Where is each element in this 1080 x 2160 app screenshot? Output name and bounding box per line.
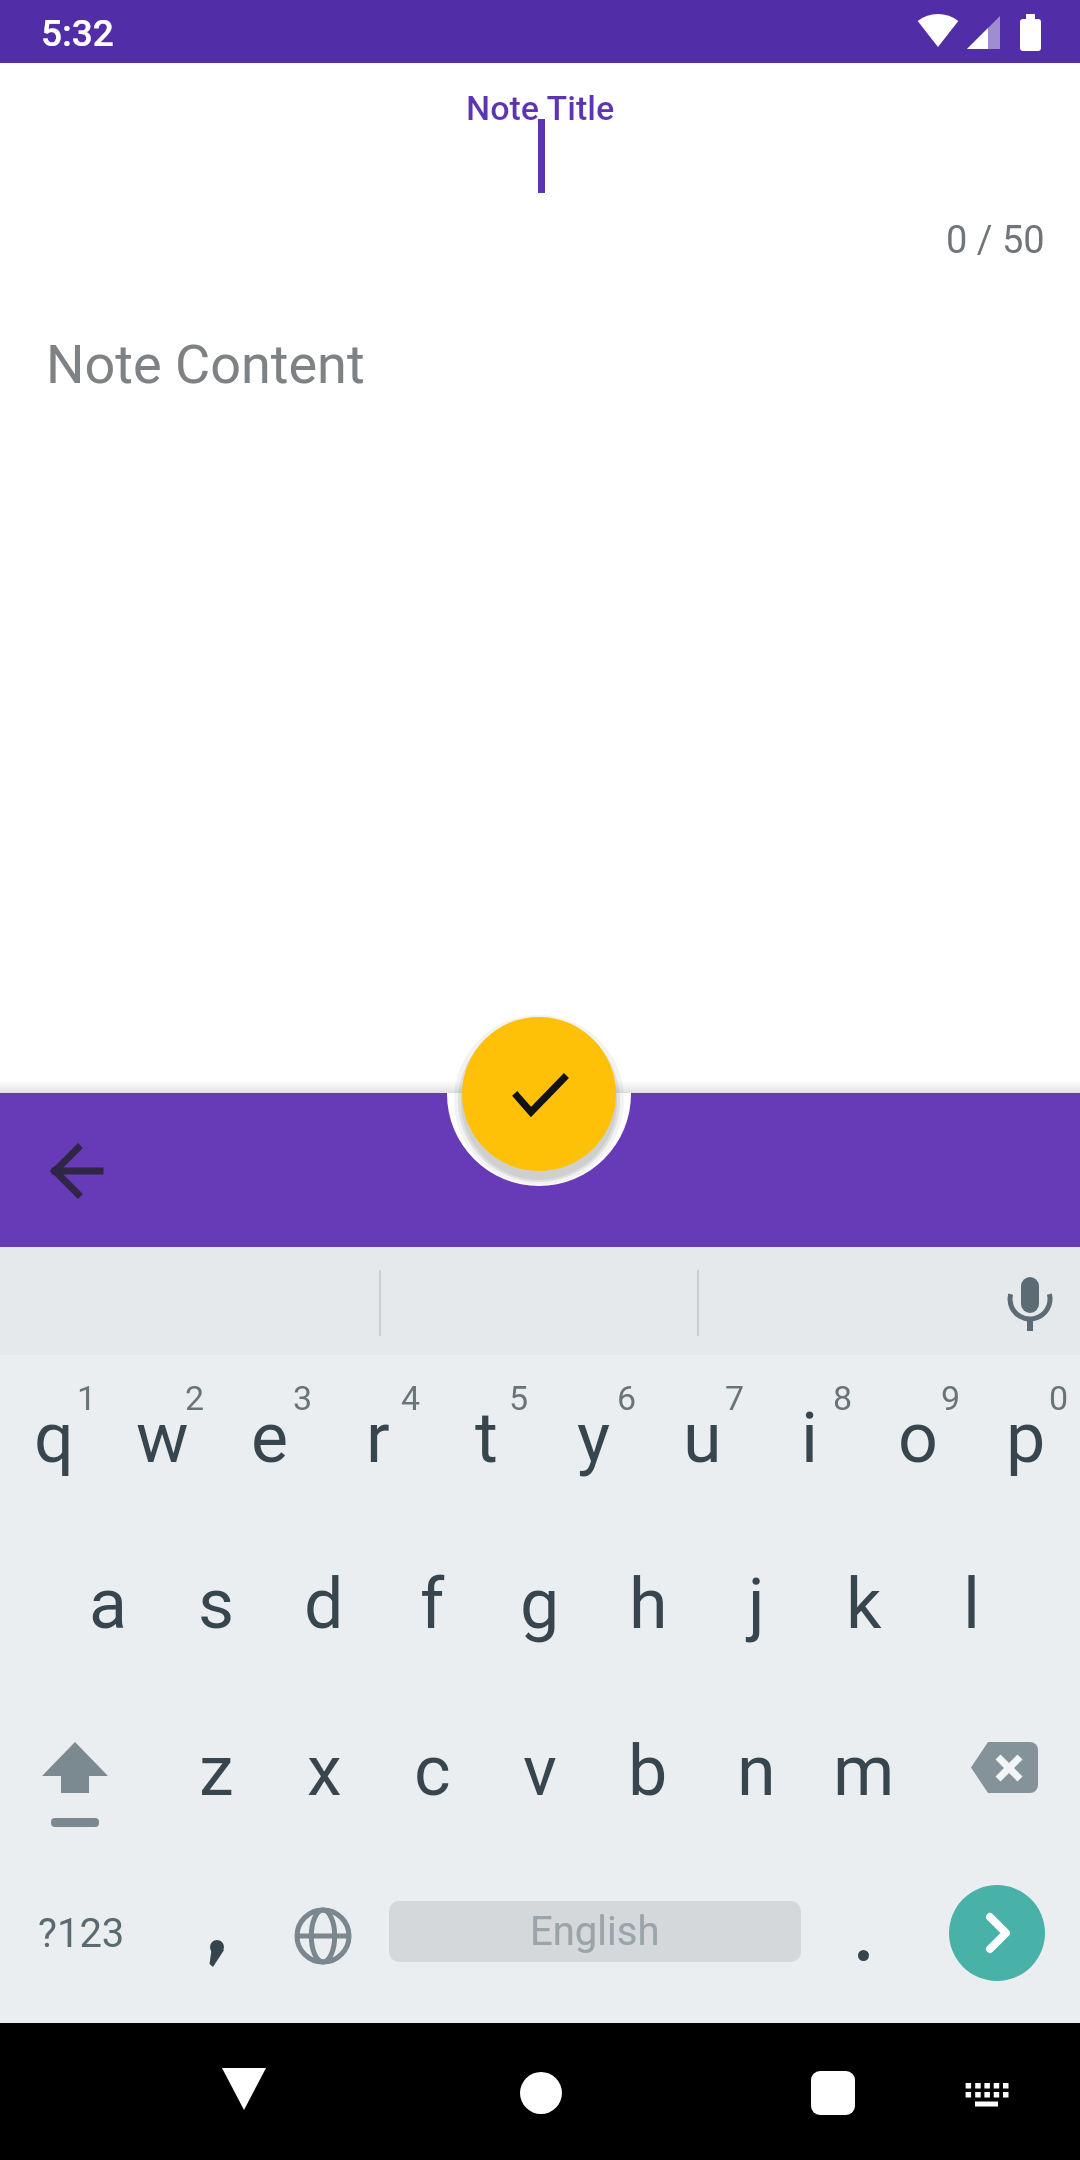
staticText: p bbox=[1006, 1397, 1046, 1479]
staticText: g bbox=[520, 1563, 560, 1645]
button[interactable] bbox=[809, 1925, 917, 1985]
staticText: u bbox=[683, 1397, 722, 1479]
staticText: o bbox=[898, 1397, 938, 1479]
staticText: a bbox=[89, 1563, 128, 1645]
staticText: n bbox=[737, 1730, 776, 1812]
staticText: Note Content bbox=[46, 333, 365, 396]
staticText: f bbox=[420, 1563, 445, 1645]
staticText: 1 bbox=[77, 1378, 97, 1418]
staticText: 9 bbox=[941, 1378, 961, 1418]
button[interactable]: f bbox=[378, 1558, 486, 1650]
button[interactable]: a bbox=[54, 1558, 162, 1650]
staticText: ?123 bbox=[38, 1910, 125, 1957]
button[interactable]: b bbox=[594, 1725, 702, 1817]
button[interactable]: r bbox=[324, 1392, 432, 1484]
staticText: h bbox=[629, 1563, 668, 1645]
staticText: x bbox=[307, 1730, 342, 1812]
button[interactable]: s bbox=[162, 1558, 270, 1650]
button[interactable]: u bbox=[648, 1392, 756, 1484]
button[interactable]: m bbox=[810, 1725, 918, 1817]
staticText: 7 bbox=[725, 1378, 745, 1418]
staticText: 0 bbox=[1049, 1378, 1069, 1418]
staticText: c bbox=[414, 1730, 451, 1812]
button[interactable]: ?123 bbox=[27, 1903, 135, 1963]
staticText: k bbox=[846, 1563, 882, 1645]
button[interactable] bbox=[200, 2068, 288, 2112]
staticText: 2 bbox=[185, 1378, 205, 1418]
button[interactable]: h bbox=[594, 1558, 702, 1650]
button[interactable]: d bbox=[270, 1558, 378, 1650]
staticText: j bbox=[748, 1563, 765, 1645]
staticText: Note Title bbox=[466, 88, 615, 128]
staticText: 8 bbox=[833, 1378, 853, 1418]
button[interactable] bbox=[163, 1903, 271, 1963]
button[interactable]: z bbox=[162, 1725, 270, 1817]
button[interactable]: g bbox=[486, 1558, 594, 1650]
staticText: d bbox=[304, 1563, 344, 1645]
button[interactable]: p bbox=[972, 1392, 1080, 1484]
button[interactable] bbox=[950, 1716, 1058, 1824]
button[interactable]: x bbox=[270, 1725, 378, 1817]
button[interactable] bbox=[21, 1716, 129, 1824]
staticText: 6 bbox=[617, 1378, 637, 1418]
button[interactable]: e bbox=[216, 1392, 324, 1484]
button[interactable]: w bbox=[108, 1392, 216, 1484]
button[interactable]: y bbox=[540, 1392, 648, 1484]
staticText: l bbox=[963, 1563, 981, 1645]
button[interactable]: l bbox=[918, 1558, 1026, 1650]
button[interactable] bbox=[949, 1885, 1045, 1981]
staticText: t bbox=[475, 1397, 498, 1479]
button[interactable]: t bbox=[432, 1392, 540, 1484]
staticText: 4 bbox=[401, 1378, 421, 1418]
button[interactable]: j bbox=[702, 1558, 810, 1650]
button[interactable] bbox=[789, 2071, 877, 2115]
staticText: 5:32 bbox=[41, 12, 114, 55]
staticText: w bbox=[136, 1397, 189, 1479]
button[interactable] bbox=[497, 2071, 585, 2115]
button[interactable]: c bbox=[378, 1725, 486, 1817]
staticText: z bbox=[199, 1730, 234, 1812]
staticText: i bbox=[801, 1397, 819, 1479]
button[interactable] bbox=[940, 2078, 1028, 2122]
button[interactable]: q bbox=[0, 1392, 108, 1484]
button[interactable] bbox=[36, 1130, 120, 1214]
staticText: 0 / 50 bbox=[946, 218, 1045, 263]
staticText: q bbox=[34, 1397, 74, 1479]
staticText: m bbox=[833, 1730, 895, 1812]
button[interactable]: English bbox=[389, 1901, 801, 1962]
button[interactable]: n bbox=[702, 1725, 810, 1817]
staticText: r bbox=[366, 1397, 390, 1479]
button[interactable]: v bbox=[486, 1725, 594, 1817]
staticText: e bbox=[251, 1397, 289, 1479]
staticText: v bbox=[523, 1730, 557, 1812]
staticText: b bbox=[628, 1730, 668, 1812]
button[interactable] bbox=[269, 1903, 377, 1963]
staticText: s bbox=[198, 1563, 235, 1645]
staticText: 5 bbox=[509, 1378, 529, 1418]
staticText: 3 bbox=[293, 1378, 313, 1418]
staticText: English bbox=[530, 1908, 660, 1955]
button[interactable]: k bbox=[810, 1558, 918, 1650]
button[interactable] bbox=[462, 1017, 616, 1171]
button[interactable]: i bbox=[756, 1392, 864, 1484]
staticText: y bbox=[577, 1397, 611, 1479]
button[interactable]: o bbox=[864, 1392, 972, 1484]
